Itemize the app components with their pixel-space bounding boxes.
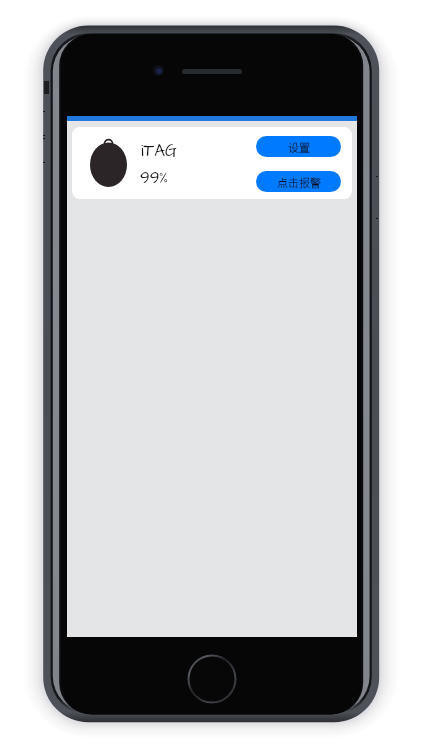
- button[interactable]: Power: [376, 176, 378, 219]
- button[interactable]: iTAG: [72, 127, 352, 199]
- button[interactable]: Volume up: [43, 111, 45, 136]
- staticText: iTAG: [141, 139, 177, 163]
- button[interactable]: 点击报警: [256, 171, 341, 192]
- button[interactable]: 设置: [256, 136, 341, 157]
- button[interactable]: Home: [187, 654, 237, 704]
- staticText: 99%: [140, 166, 169, 190]
- staticText: 设置: [288, 139, 310, 155]
- button[interactable]: Volume down: [43, 138, 45, 163]
- staticText: 点击报警: [277, 174, 321, 190]
